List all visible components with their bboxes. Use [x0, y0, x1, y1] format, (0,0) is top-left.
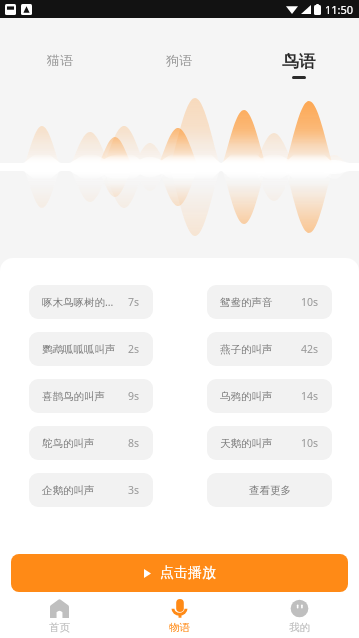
staticText: 企鹅的叫声 — [42, 484, 95, 497]
staticText: 42s — [301, 342, 319, 356]
staticText: 喜鹊鸟的叫声 — [42, 390, 105, 403]
button[interactable]: 企鹅的叫声 — [29, 473, 153, 507]
staticText: 鸵鸟的叫声 — [42, 437, 95, 450]
staticText: 猫语 — [47, 52, 73, 68]
button[interactable]: 鸳鸯的声音 — [207, 285, 332, 319]
staticText: 啄木鸟啄树的… — [42, 295, 114, 309]
staticText: 2s — [128, 342, 140, 356]
button[interactable]: 乌鸦的叫声 — [207, 379, 332, 413]
button[interactable]: 我的 — [239, 592, 359, 638]
staticText: 14s — [301, 389, 319, 403]
button[interactable]: 啄木鸟啄树的… — [29, 285, 153, 319]
button[interactable]: 猫语 — [0, 18, 119, 88]
staticText: 查看更多 — [249, 484, 291, 497]
button[interactable]: 喜鹊鸟的叫声 — [29, 379, 153, 413]
staticText: 点击播放 — [160, 564, 216, 582]
button[interactable]: 鸵鸟的叫声 — [29, 426, 153, 460]
staticText: 鸳鸯的声音 — [220, 296, 273, 309]
button[interactable]: 狗语 — [119, 18, 239, 88]
staticText: 10s — [301, 436, 319, 450]
staticText: 天鹅的叫声 — [220, 437, 273, 450]
button[interactable]: 查看更多 — [207, 473, 332, 507]
button[interactable]: 鹦鹉呱呱呱叫声 — [29, 332, 153, 366]
button[interactable]: 燕子的叫声 — [207, 332, 332, 366]
staticText: 7s — [128, 295, 140, 309]
button[interactable]: 天鹅的叫声 — [207, 426, 332, 460]
staticText: 首页 — [49, 621, 70, 634]
staticText: 狗语 — [166, 52, 192, 68]
staticText: 鸟语 — [282, 51, 316, 72]
staticText: 8s — [128, 436, 140, 450]
staticText: 3s — [128, 483, 140, 497]
button[interactable]: 物语 — [119, 592, 239, 638]
staticText: 物语 — [169, 621, 190, 634]
staticText: 乌鸦的叫声 — [220, 390, 273, 403]
staticText: 9s — [128, 389, 140, 403]
button[interactable]: 点击播放 — [11, 554, 348, 592]
button[interactable]: 首页 — [0, 592, 119, 638]
staticText: 10s — [301, 295, 319, 309]
button[interactable]: 鸟语 — [239, 18, 359, 88]
staticText: 11:50 — [325, 2, 354, 17]
staticText: 我的 — [289, 621, 310, 634]
staticText: 燕子的叫声 — [220, 343, 273, 356]
staticText: 鹦鹉呱呱呱叫声 — [42, 343, 116, 356]
